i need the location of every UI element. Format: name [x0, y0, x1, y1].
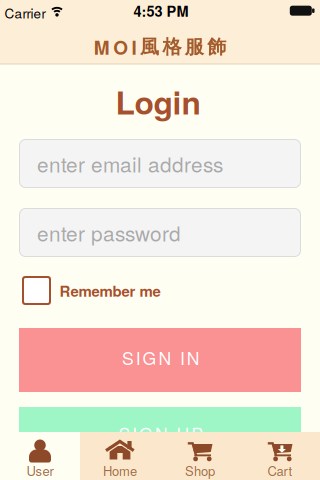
button[interactable]: Home — [80, 432, 160, 480]
staticText: Remember me — [59, 280, 160, 301]
button[interactable]: User — [0, 432, 80, 480]
staticText: Carrier — [4, 3, 45, 22]
staticText: enter email address — [37, 149, 223, 178]
staticText: Login — [115, 79, 200, 124]
staticText: 格 — [162, 35, 181, 59]
button[interactable]: Remember me — [22, 276, 160, 305]
staticText: Shop — [185, 461, 215, 480]
button[interactable]: SIGN UP — [19, 407, 301, 471]
staticText: enter password — [37, 218, 181, 247]
button[interactable]: SIGN IN — [19, 328, 301, 392]
staticText: I — [132, 33, 137, 61]
staticText: Cart — [267, 461, 292, 480]
button[interactable]: Shop — [160, 432, 240, 480]
staticText: User — [26, 461, 53, 480]
staticText: 飾 — [207, 35, 226, 59]
staticText: M — [94, 33, 110, 61]
staticText: 服 — [185, 35, 204, 59]
staticText: 風 — [140, 35, 159, 59]
staticText: SIGN IN — [121, 345, 199, 370]
staticText: O — [113, 33, 128, 61]
button[interactable]: Cart — [240, 432, 320, 480]
staticText: Home — [103, 461, 137, 480]
staticText: SIGN UP — [118, 421, 202, 446]
staticText: 4:53 PM — [133, 0, 188, 21]
